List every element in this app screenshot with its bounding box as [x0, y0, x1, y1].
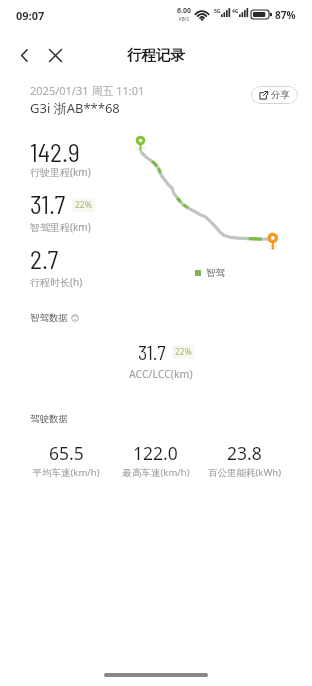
staticText: 平均车速(km/h): [32, 466, 100, 479]
staticText: G3i 浙AB***68: [30, 99, 120, 117]
button[interactable]: Close: [40, 40, 70, 70]
staticText: 2025/01/31 周五 11:01: [30, 83, 145, 98]
staticText: 最高车速(km/h): [122, 466, 190, 479]
staticText: 智驾数据: [30, 312, 68, 324]
staticText: 行程时长(h): [30, 275, 83, 289]
staticText: 09:07: [16, 8, 45, 23]
staticText: 22%: [175, 346, 192, 358]
staticText: KB/S: [179, 16, 189, 22]
staticText: 142.9: [30, 136, 80, 167]
staticText: 百公里能耗(kWh): [208, 466, 281, 479]
staticText: 2.7: [30, 243, 59, 274]
staticText: 65.5: [49, 441, 84, 465]
staticText: 行程记录: [127, 46, 185, 64]
staticText: 4G: [232, 8, 239, 15]
button[interactable]: Back: [9, 40, 39, 70]
staticText: 驾驶数据: [30, 413, 68, 425]
staticText: 6.00: [177, 6, 191, 16]
staticText: 23.8: [227, 441, 262, 465]
staticText: ACC/LCC(km): [129, 367, 193, 381]
staticText: 智驾里程(km): [30, 220, 91, 234]
staticText: 行驶里程(km): [30, 165, 91, 179]
button[interactable]: 分享: [251, 86, 298, 104]
staticText: 分享: [271, 89, 290, 101]
staticText: 智驾: [206, 267, 225, 279]
staticText: 22%: [75, 199, 92, 211]
staticText: 31.7: [30, 188, 66, 219]
staticText: 5G: [214, 8, 221, 15]
staticText: 31.7: [138, 340, 166, 364]
staticText: 122.0: [133, 441, 178, 465]
staticText: 87%: [275, 8, 296, 22]
